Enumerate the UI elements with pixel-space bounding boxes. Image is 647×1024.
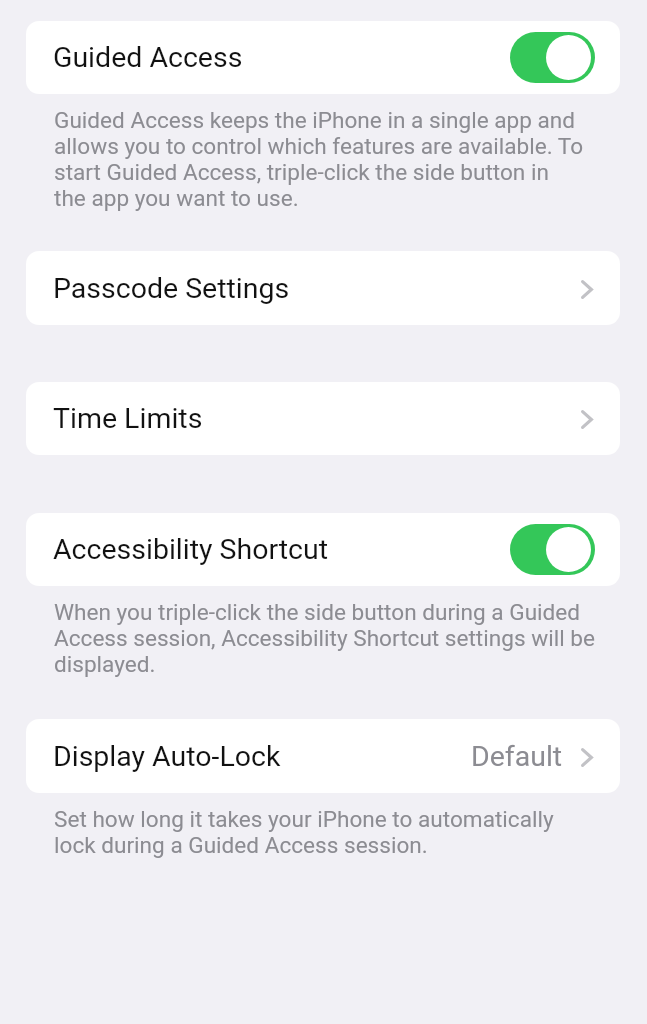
staticText: Set how long it takes your iPhone to aut… — [54, 806, 554, 858]
button[interactable]: Passcode Settings — [26, 251, 620, 325]
staticText: Display Auto-Lock — [53, 740, 281, 773]
button[interactable]: Guided Access switch, on — [510, 32, 595, 83]
staticText: Accessibility Shortcut — [53, 533, 329, 566]
staticText: Default — [471, 740, 563, 773]
button[interactable]: Accessibility Shortcut switch, on — [510, 524, 595, 575]
button[interactable]: Accessibility Shortcut — [26, 513, 620, 586]
staticText: Passcode Settings — [53, 272, 290, 305]
button[interactable]: Time Limits — [26, 382, 620, 455]
staticText: Guided Access keeps the iPhone in a sing… — [54, 107, 584, 211]
button[interactable]: Display Auto-Lock — [26, 719, 620, 793]
staticText: Time Limits — [53, 402, 203, 435]
button[interactable]: Guided Access — [26, 21, 620, 94]
staticText: Guided Access — [53, 41, 243, 74]
staticText: When you triple-click the side button du… — [54, 599, 595, 677]
